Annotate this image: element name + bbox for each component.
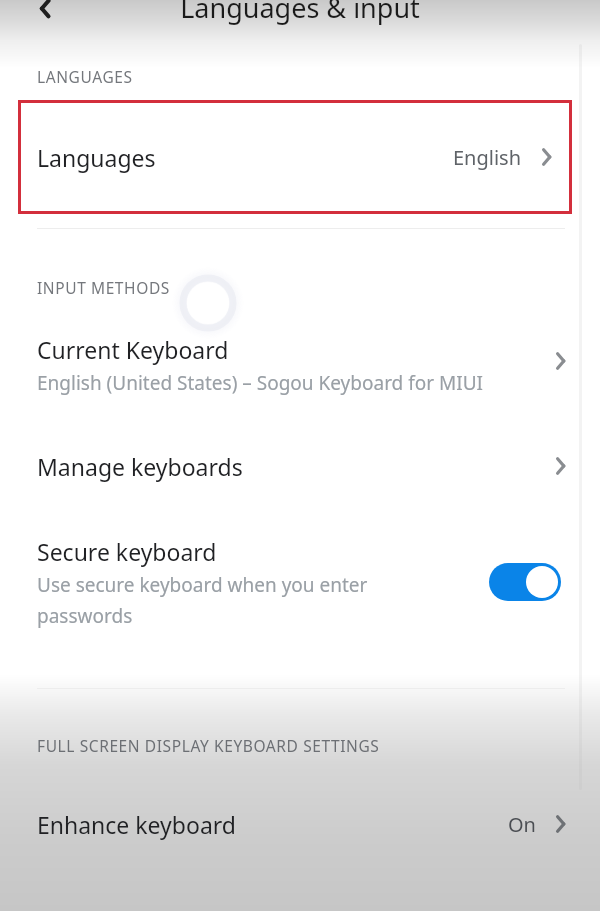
staticText: FULL SCREEN DISPLAY KEYBOARD SETTINGS [37,735,380,756]
staticText: Languages & input [180,0,420,26]
button[interactable]: Current Keyboard [37,334,572,396]
button[interactable]: Back [24,0,70,40]
staticText: Secure keyboard [37,536,217,567]
button[interactable]: Secure keyboard [37,536,561,628]
button[interactable]: Manage keyboards [37,446,572,486]
button[interactable]: Languages [18,100,572,214]
staticText: English [453,144,522,171]
staticText: LANGUAGES [37,66,133,87]
staticText: Use secure keyboard when you enter passw… [37,572,457,628]
staticText: On [508,811,536,838]
staticText: Enhance keyboard [37,809,508,840]
button[interactable]: Secure keyboard toggle, on [489,563,561,601]
staticText: INPUT METHODS [37,277,170,298]
staticText: Current Keyboard [37,334,229,365]
staticText: Languages [37,142,156,173]
staticText: English (United States) – Sogou Keyboard… [37,370,522,396]
button[interactable]: Enhance keyboard [37,804,572,844]
staticText: Manage keyboards [37,451,548,482]
